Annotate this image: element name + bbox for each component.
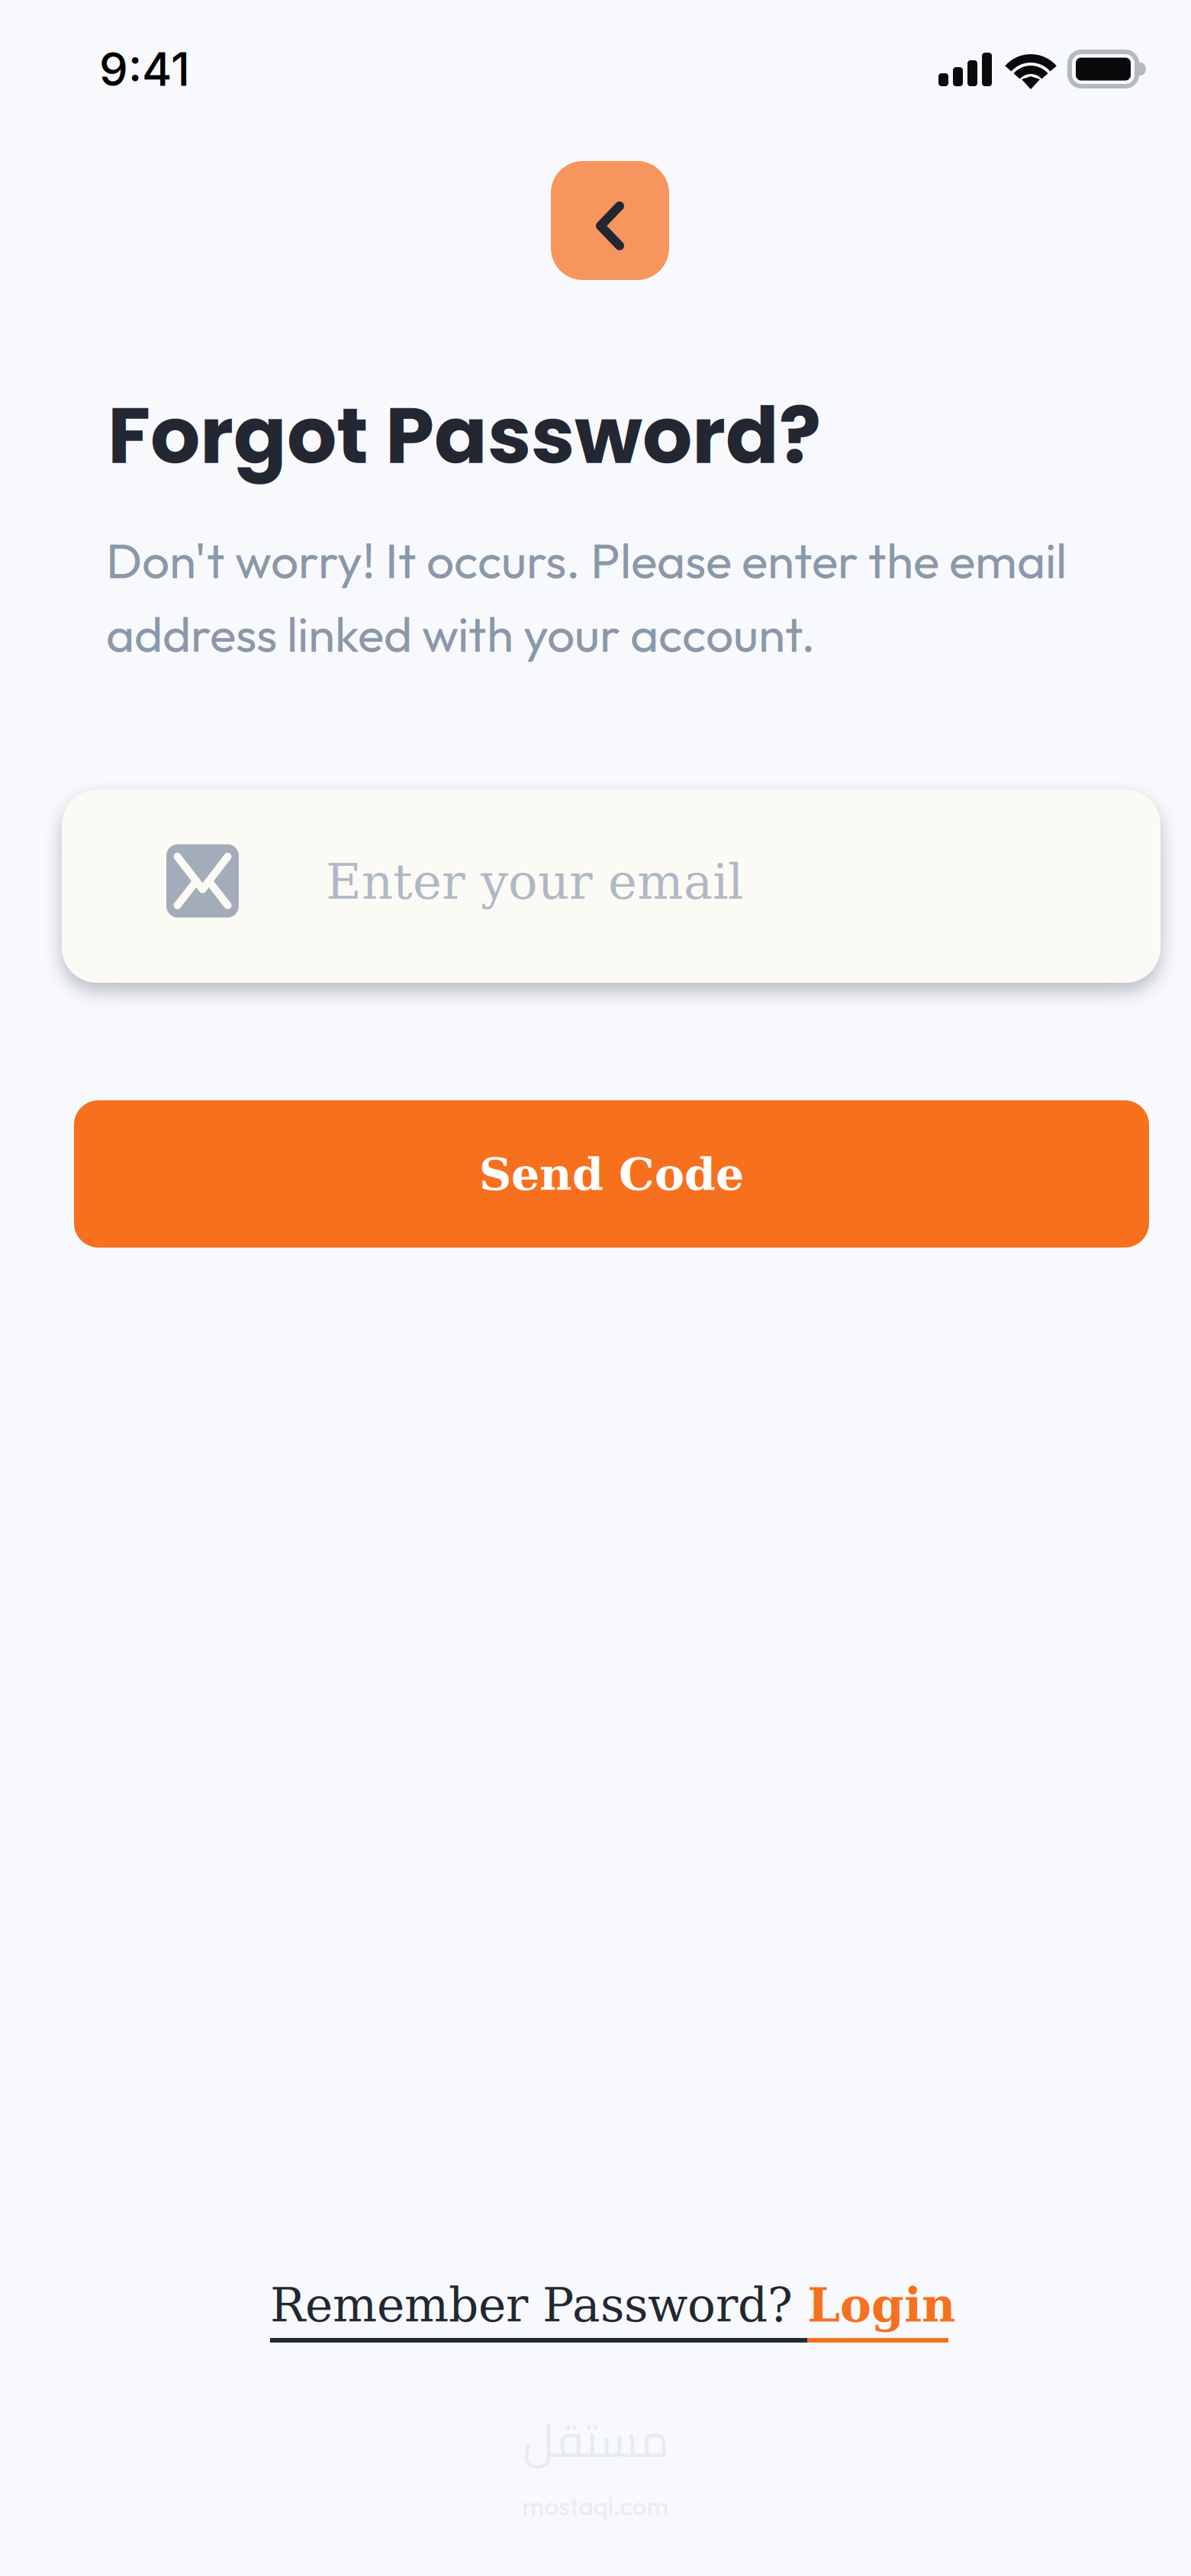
staticText: Remember Password?	[270, 2278, 807, 2332]
staticText: Enter your email	[326, 853, 743, 910]
button[interactable]: Remember Password?	[270, 2278, 956, 2343]
staticText: 9:41	[99, 42, 190, 97]
staticText: Send Code	[479, 1148, 744, 1200]
staticText: Login	[807, 2278, 956, 2333]
staticText: Forgot Password?	[108, 381, 821, 490]
staticText: Don't worry! It occurs. Please enter the…	[106, 529, 1067, 665]
staticText: mostaql.com	[522, 2490, 669, 2522]
button[interactable]: Send Code	[74, 1100, 1149, 1248]
staticText: مستقل	[522, 2396, 669, 2484]
button[interactable]: Back	[551, 161, 669, 280]
